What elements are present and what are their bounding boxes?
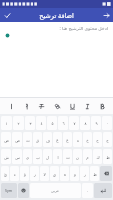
staticText: ٢ — [17, 121, 20, 125]
button[interactable]: Bold — [96, 100, 108, 112]
button[interactable]: ك — [93, 149, 102, 164]
button[interactable]: ٥ — [47, 116, 57, 130]
staticText: ١ — [5, 121, 8, 125]
staticText: ا — [57, 155, 59, 159]
button[interactable]: ٣ — [25, 116, 35, 130]
button[interactable]: ي — [23, 149, 32, 164]
staticText: ص — [15, 138, 20, 142]
button[interactable]: Strikethrough — [35, 100, 47, 112]
button[interactable]: ؤ — [20, 166, 29, 181]
button[interactable]: ن — [73, 149, 82, 164]
button[interactable]: ص — [12, 132, 22, 147]
button[interactable]: لا — [40, 166, 49, 181]
staticText: ع — [66, 138, 69, 142]
staticText: ظ — [93, 172, 97, 176]
button[interactable]: ٧ — [69, 116, 79, 130]
button[interactable]: ف — [43, 132, 52, 147]
button[interactable]: ة — [60, 166, 69, 181]
button[interactable]: Paragraph — [20, 100, 32, 112]
button[interactable]: ع — [63, 132, 72, 147]
staticText: اضافة ترشيح — [39, 11, 74, 20]
button[interactable]: : ادخل محتوى الترشيح هنا — [0, 22, 113, 97]
staticText: ث — [26, 138, 30, 142]
button[interactable]: Link — [51, 100, 63, 112]
staticText: م — [86, 155, 89, 159]
button[interactable]: ش — [1, 149, 11, 164]
staticText: ٧ — [73, 121, 76, 125]
button[interactable]: Italic — [81, 100, 93, 112]
staticText: ه — [77, 138, 79, 142]
staticText: Sym — [5, 188, 13, 193]
button[interactable]: ٤ — [36, 116, 46, 130]
staticText: ف — [46, 138, 50, 142]
button[interactable]: ظ — [90, 166, 99, 181]
staticText: ٤ — [40, 121, 43, 125]
staticText: ب — [36, 155, 40, 159]
button[interactable]: غ — [53, 132, 62, 147]
button[interactable]: ل — [43, 149, 52, 164]
button[interactable]: س — [12, 149, 22, 164]
button[interactable]: ٢ — [13, 116, 24, 130]
staticText: ة — [64, 172, 66, 176]
staticText: ء — [14, 172, 16, 176]
staticText: ك — [96, 155, 100, 159]
staticText: ح — [96, 138, 99, 142]
button[interactable]: Space — [30, 183, 81, 198]
button[interactable]: ه — [73, 132, 82, 147]
staticText: ز — [84, 172, 86, 176]
staticText: خ — [86, 138, 89, 142]
button[interactable]: ض — [1, 132, 11, 147]
button[interactable]: و — [70, 166, 79, 181]
button[interactable]: ٨ — [80, 116, 90, 130]
staticText: ٥ — [51, 121, 54, 125]
staticText: ٦ — [62, 121, 65, 125]
staticText: ٨ — [84, 121, 87, 125]
staticText: ؤ — [24, 172, 26, 176]
button[interactable]: ء — [10, 166, 19, 181]
button[interactable]: ٩ — [91, 116, 101, 130]
staticText: ٠ — [106, 121, 109, 125]
staticText: ي — [26, 155, 29, 159]
button[interactable]: م — [83, 149, 92, 164]
button[interactable]: Back — [99, 8, 113, 22]
button[interactable]: ا — [53, 149, 62, 164]
button[interactable]: ١ — [1, 116, 12, 130]
button[interactable]: ئ — [1, 166, 9, 181]
button[interactable]: ث — [23, 132, 32, 147]
staticText: غ — [56, 138, 59, 142]
button[interactable]: ب — [33, 149, 42, 164]
staticText: ج — [106, 138, 109, 142]
button[interactable]: ق — [33, 132, 42, 147]
button[interactable]: ٦ — [58, 116, 68, 130]
staticText: لا — [43, 172, 46, 176]
button[interactable]: Backspace — [100, 166, 112, 181]
button[interactable]: ت — [63, 149, 72, 164]
staticText: ئ — [4, 172, 7, 176]
button[interactable]: Sym — [1, 183, 17, 198]
button[interactable]: Cursor — [5, 100, 17, 112]
button[interactable]: Underline — [66, 100, 78, 112]
staticText: س — [15, 155, 20, 159]
button[interactable]: ج — [103, 132, 112, 147]
staticText: : ادخل محتوى الترشيح هنا — [5, 25, 108, 31]
button[interactable]: ح — [93, 132, 102, 147]
staticText: عربي — [51, 189, 60, 193]
button[interactable]: ى — [50, 166, 59, 181]
staticText: ض — [4, 138, 9, 142]
staticText: ى — [53, 172, 56, 176]
staticText: ش — [4, 155, 9, 159]
button[interactable]: Enter — [94, 183, 112, 198]
staticText: ل — [46, 155, 49, 159]
button[interactable]: Emoji — [18, 183, 29, 198]
staticText: ٣ — [29, 121, 32, 125]
button[interactable]: خ — [83, 132, 92, 147]
staticText: ق — [36, 138, 39, 142]
staticText: ن — [76, 155, 79, 159]
button[interactable]: Confirm — [0, 8, 14, 22]
staticText: . — [87, 188, 89, 194]
button[interactable]: ط — [103, 149, 112, 164]
button[interactable]: ر — [30, 166, 39, 181]
button[interactable]: ز — [80, 166, 89, 181]
